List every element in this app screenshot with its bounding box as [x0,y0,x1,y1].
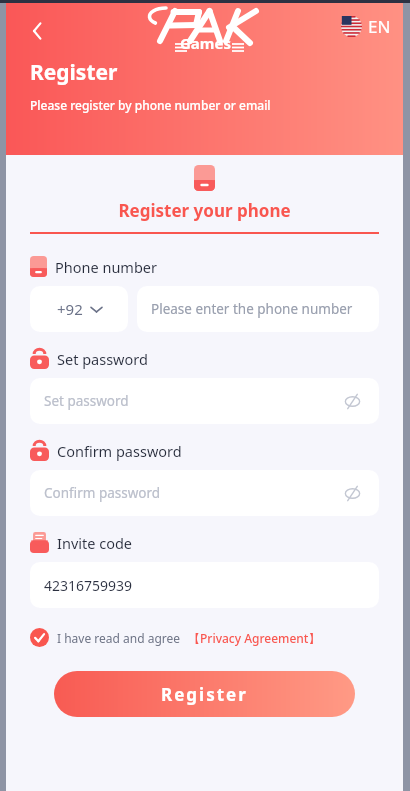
staticText: Please register by phone number or email [30,97,271,113]
button[interactable]: +92 [30,286,128,332]
button[interactable]: Please enter the phone number [137,286,379,332]
button[interactable]: Register your phone [118,199,291,222]
button[interactable]: Toggle password visibility [339,388,365,414]
staticText: I have read and agree [57,630,181,646]
staticText: Please enter the phone number [151,300,353,318]
button[interactable]: Back [20,13,56,49]
button[interactable]: Confirm password [30,470,379,516]
button[interactable]: EN [341,15,391,38]
staticText: Set password [57,349,148,369]
staticText: Register [161,683,248,706]
staticText: +92 [57,299,83,319]
staticText: EN [368,15,391,38]
staticText: Confirm password [44,484,161,502]
staticText: 42316759939 [44,576,133,595]
staticText: Phone number [55,257,157,277]
staticText: Register [30,58,118,87]
staticText: Games [180,33,231,53]
button[interactable]: I have read and agree [30,628,379,647]
staticText: Set password [44,392,129,410]
button[interactable]: 【Privacy Agreement】 [188,630,321,646]
button[interactable]: 42316759939 [30,562,379,608]
button[interactable]: Toggle password visibility [339,480,365,506]
staticText: Invite code [57,533,132,553]
button[interactable]: Set password [30,378,379,424]
button[interactable]: Register [54,671,355,717]
staticText: Confirm password [57,441,182,461]
